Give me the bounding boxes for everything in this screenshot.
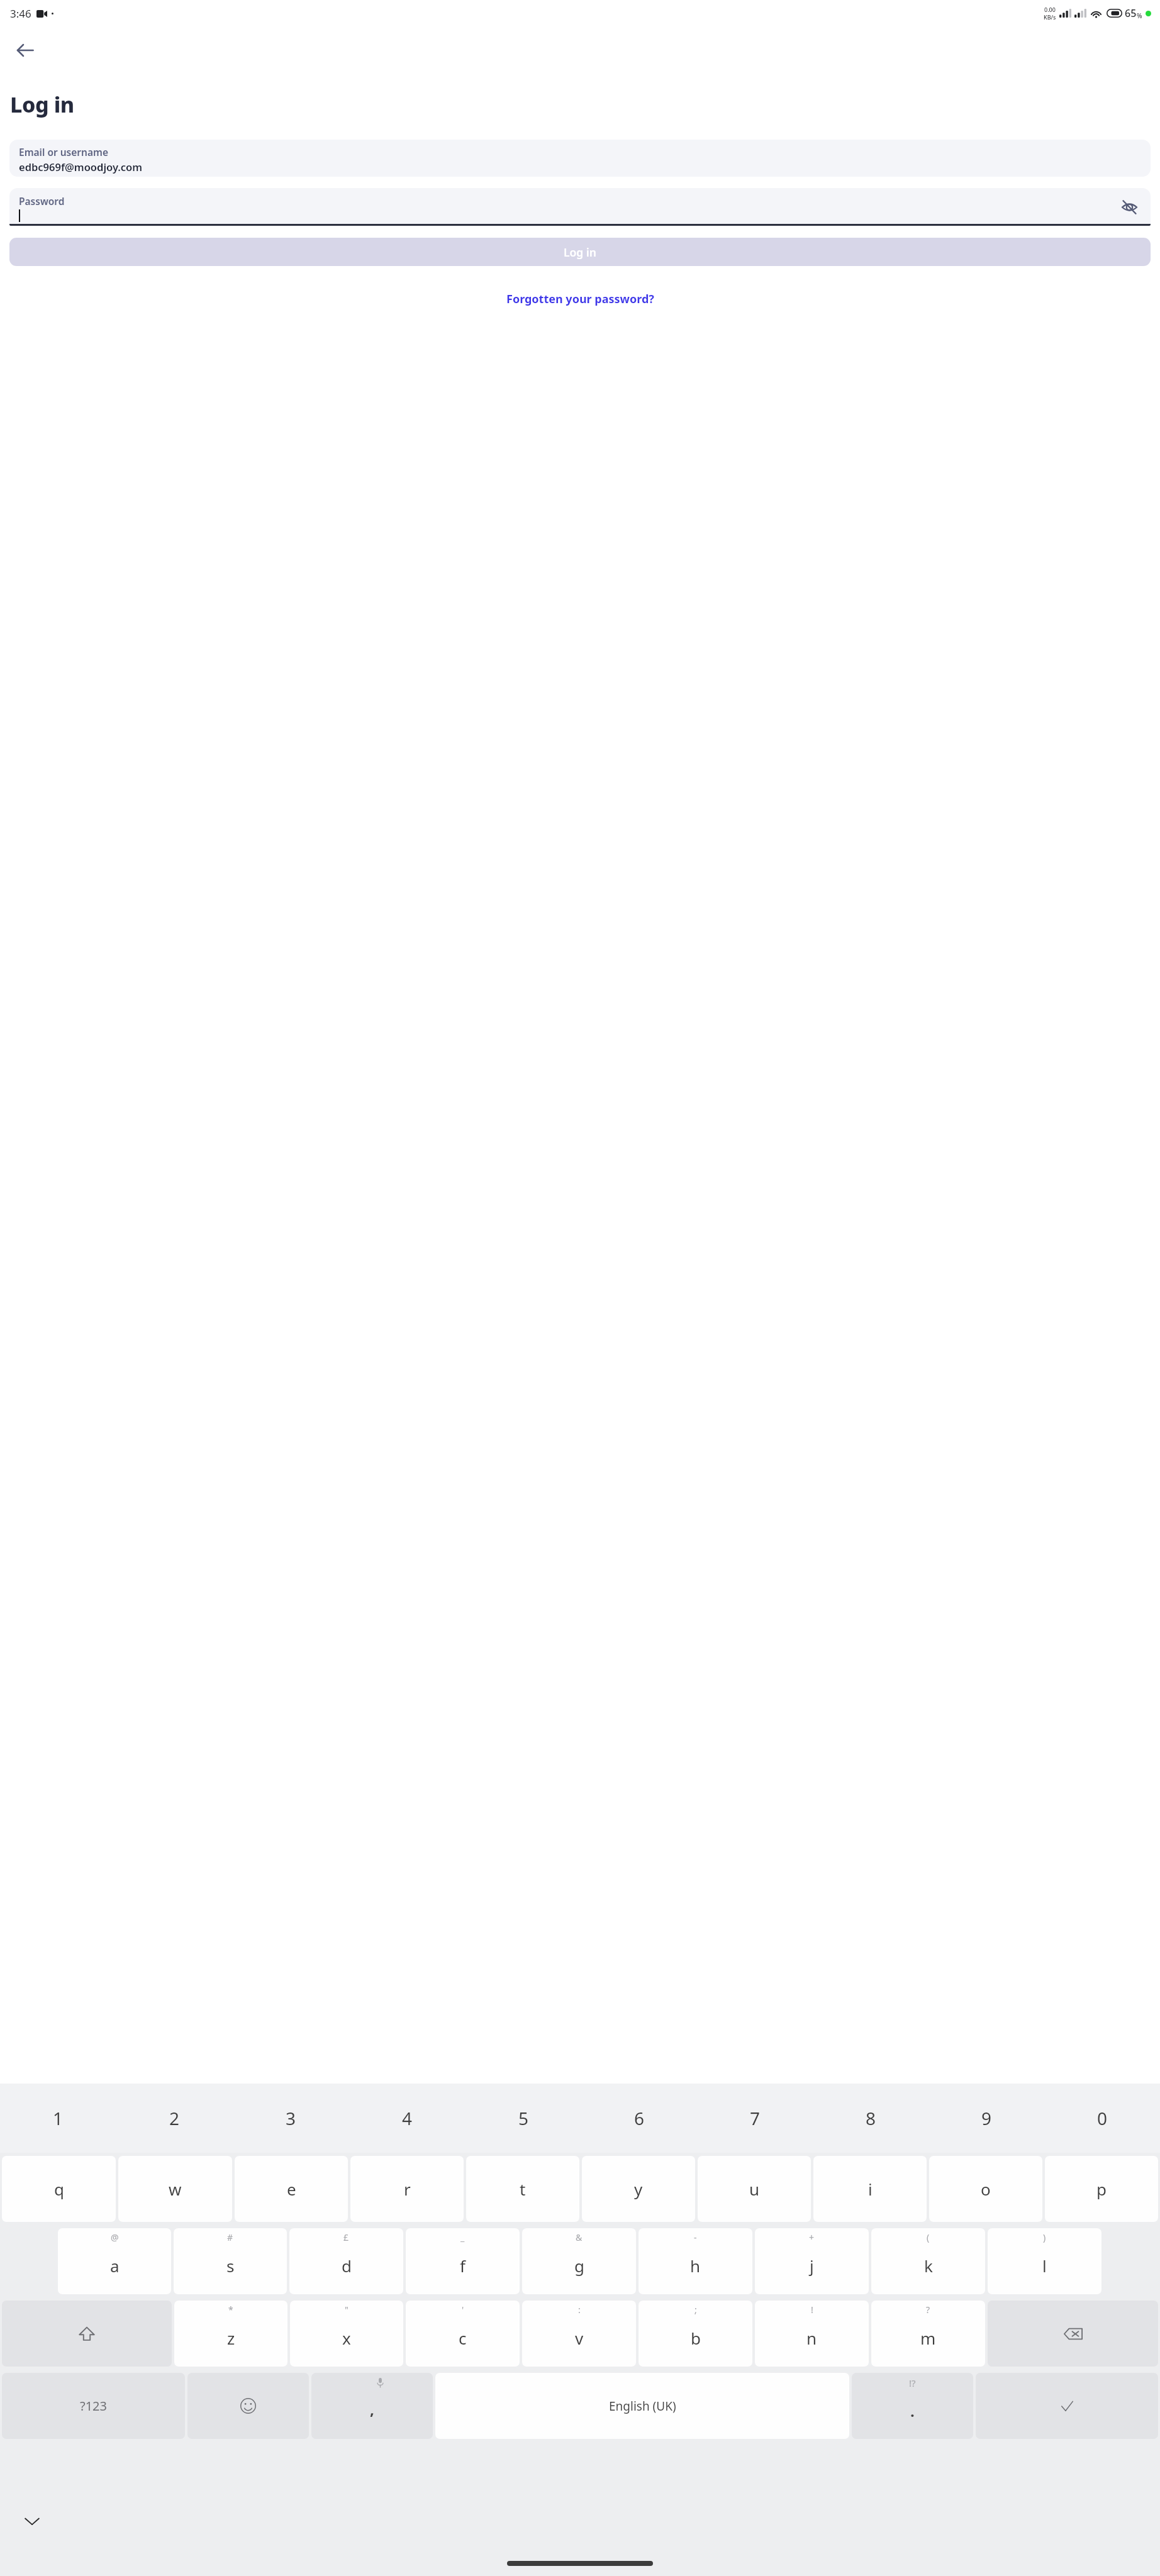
button[interactable]: ?123 (2, 2373, 185, 2439)
staticText: l (1042, 2255, 1047, 2277)
staticText: ( (927, 2231, 930, 2243)
staticText: k (924, 2255, 933, 2277)
button[interactable]: & (522, 2228, 636, 2294)
staticText: Password (19, 194, 65, 208)
button[interactable]: : (522, 2301, 636, 2367)
button[interactable]: £ (289, 2228, 403, 2294)
staticText: !? (909, 2377, 916, 2389)
staticText: # (227, 2231, 233, 2243)
staticText: n (806, 2327, 817, 2349)
staticText: q (54, 2178, 64, 2200)
button[interactable]: 5 (466, 2084, 581, 2153)
button[interactable]: 0 (1044, 2084, 1160, 2153)
staticText: 4 (402, 2106, 413, 2130)
button[interactable]: 7 (697, 2084, 813, 2153)
button[interactable]: q (2, 2156, 116, 2222)
staticText: & (576, 2231, 583, 2243)
staticText: p (1096, 2178, 1107, 2200)
button[interactable]: p (1045, 2156, 1158, 2222)
button[interactable]: , (311, 2373, 433, 2439)
staticText: edbc969f@moodjoy.com (19, 160, 143, 174)
button[interactable]: + (755, 2228, 869, 2294)
staticText: v (575, 2327, 584, 2349)
staticText: Log in (564, 245, 596, 260)
staticText: a (110, 2255, 120, 2277)
button[interactable]: ; (639, 2301, 752, 2367)
button[interactable]: ) (988, 2228, 1101, 2294)
button[interactable]: @ (58, 2228, 171, 2294)
staticText: ; (694, 2304, 697, 2316)
staticText: f (460, 2255, 466, 2277)
button[interactable]: w (118, 2156, 232, 2222)
button[interactable]: !? (852, 2373, 973, 2439)
button[interactable]: 6 (581, 2084, 697, 2153)
staticText: ' (462, 2304, 464, 2316)
staticText: , (370, 2399, 374, 2419)
staticText: m (920, 2327, 936, 2349)
button[interactable]: * (174, 2301, 287, 2367)
staticText: . (910, 2401, 915, 2421)
button[interactable]: English (UK) (435, 2373, 849, 2439)
staticText: x (342, 2327, 351, 2349)
button[interactable]: 1 (0, 2084, 116, 2153)
staticText: KB/s (1044, 13, 1056, 21)
staticText: + (809, 2231, 815, 2243)
staticText: Log in (10, 90, 74, 119)
button[interactable]: t (466, 2156, 579, 2222)
button[interactable]: _ (406, 2228, 520, 2294)
staticText: £ (343, 2231, 349, 2243)
staticText: : (578, 2304, 581, 2316)
button[interactable]: ' (406, 2301, 520, 2367)
button[interactable]: Show password (1115, 193, 1143, 221)
button[interactable]: 9 (929, 2084, 1044, 2153)
button[interactable]: e (235, 2156, 348, 2222)
button[interactable]: Emoji (187, 2373, 309, 2439)
staticText: 0 (1097, 2106, 1108, 2130)
button[interactable]: 2 (116, 2084, 233, 2153)
staticText: @ (111, 2231, 119, 2243)
staticText: ?123 (80, 2397, 107, 2414)
button[interactable]: # (174, 2228, 287, 2294)
button[interactable]: y (582, 2156, 695, 2222)
staticText: h (690, 2255, 701, 2277)
button[interactable]: Backspace (988, 2301, 1158, 2367)
button[interactable]: 3 (233, 2084, 349, 2153)
button[interactable]: 8 (813, 2084, 929, 2153)
staticText: b (691, 2327, 701, 2349)
staticText: ! (811, 2304, 813, 2316)
button[interactable]: ? (871, 2301, 985, 2367)
button[interactable]: ! (755, 2301, 869, 2367)
staticText: Email or username (19, 145, 108, 158)
button[interactable]: Shift (2, 2301, 172, 2367)
staticText: % (1137, 11, 1142, 20)
button[interactable]: Email or username (9, 140, 1151, 177)
button[interactable]: Hide keyboard (15, 2504, 49, 2538)
button[interactable]: - (639, 2228, 752, 2294)
staticText: c (459, 2327, 467, 2349)
staticText: y (634, 2178, 643, 2200)
button[interactable]: Password (9, 188, 1151, 226)
staticText: 2 (169, 2106, 180, 2130)
staticText: 8 (866, 2106, 876, 2130)
button[interactable]: i (813, 2156, 927, 2222)
staticText: 0.00 (1044, 6, 1056, 13)
staticText: r (404, 2178, 411, 2200)
staticText: 5 (518, 2106, 529, 2130)
staticText: _ (460, 2231, 465, 2243)
button[interactable]: ( (871, 2228, 985, 2294)
button[interactable]: r (350, 2156, 464, 2222)
staticText: English (UK) (609, 2398, 676, 2414)
button[interactable]: " (290, 2301, 403, 2367)
staticText: e (287, 2178, 296, 2200)
button[interactable]: Enter (976, 2373, 1158, 2439)
staticText: d (342, 2255, 352, 2277)
button[interactable]: Forgotten your password? (0, 286, 1160, 312)
button[interactable]: Back (8, 33, 43, 68)
staticText: j (810, 2255, 814, 2277)
button[interactable]: u (698, 2156, 811, 2222)
staticText: g (574, 2255, 584, 2277)
staticText: i (868, 2178, 873, 2200)
button[interactable]: o (929, 2156, 1042, 2222)
button[interactable]: 4 (349, 2084, 466, 2153)
